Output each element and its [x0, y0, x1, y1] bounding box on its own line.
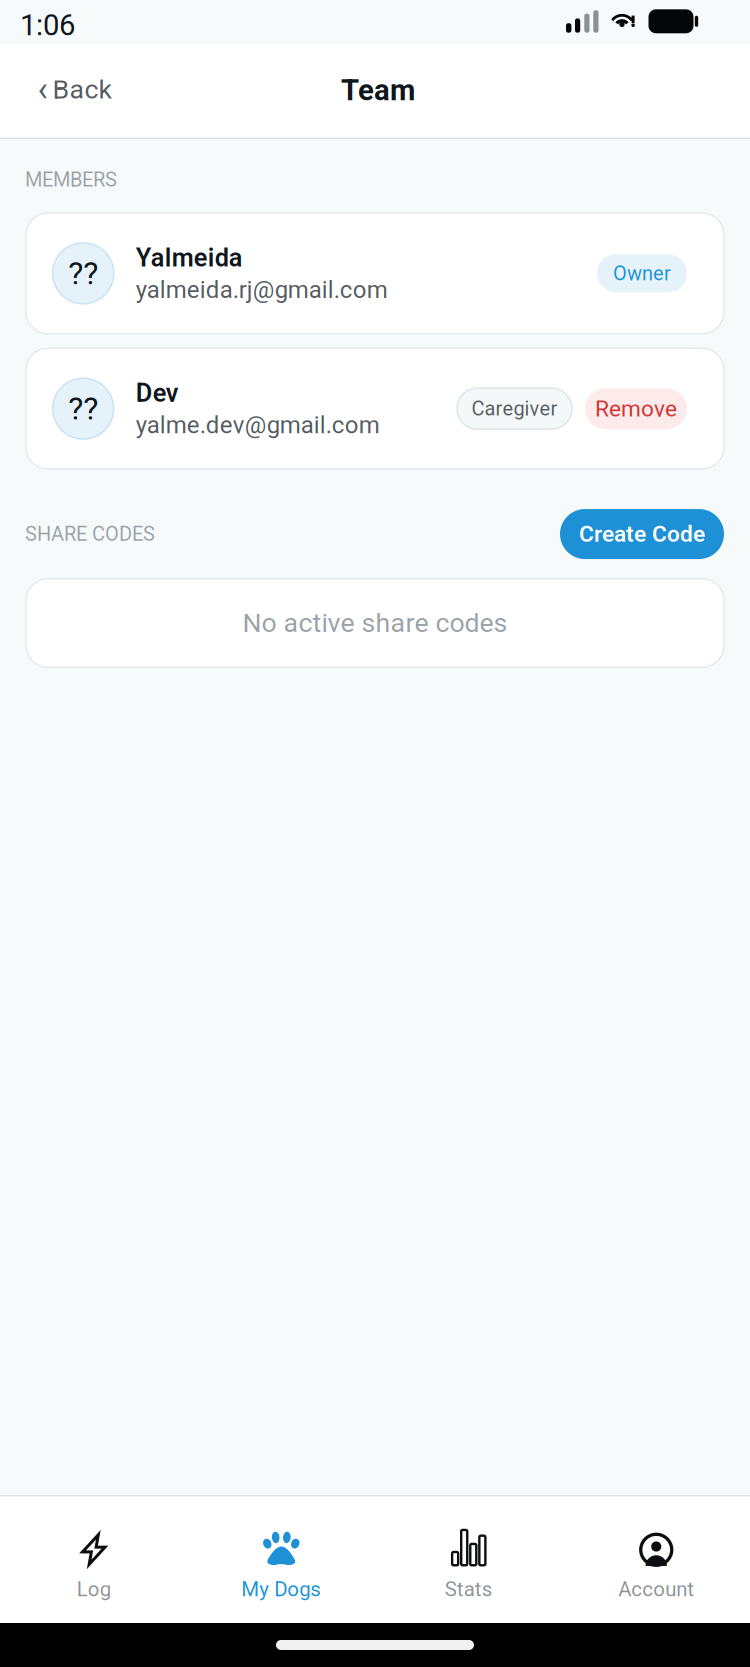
staticText: No active share codes	[242, 607, 507, 639]
staticText: Team	[341, 73, 415, 107]
staticText: ??	[68, 255, 98, 292]
staticText: Caregiver	[471, 397, 557, 420]
staticText: ??	[68, 390, 98, 427]
button[interactable]: ‹	[17, 53, 132, 126]
button[interactable]: My Dogs	[187, 1493, 375, 1626]
button[interactable]: Owner	[597, 254, 687, 292]
button[interactable]: Caregiver	[457, 388, 572, 429]
staticText: ‹	[37, 69, 47, 110]
staticText: Back	[52, 74, 112, 105]
staticText: SHARE CODES	[25, 522, 155, 546]
button[interactable]: Log	[0, 1493, 187, 1626]
staticText: yalme.dev@gmail.com	[136, 411, 380, 439]
staticText: Owner	[613, 262, 671, 285]
staticText: Yalmeida	[136, 243, 243, 273]
staticText: 1:06	[20, 8, 75, 42]
staticText: Remove	[595, 395, 677, 422]
staticText: Create Code	[579, 521, 705, 547]
staticText: MEMBERS	[25, 168, 117, 191]
staticText: My Dogs	[241, 1577, 321, 1601]
staticText: yalmeida.rj@gmail.com	[136, 276, 388, 304]
staticText: Dev	[136, 378, 179, 408]
button[interactable]: Account	[562, 1493, 750, 1626]
staticText: Stats	[445, 1577, 493, 1601]
button[interactable]: Remove	[585, 388, 687, 429]
button[interactable]: Stats	[375, 1493, 562, 1626]
staticText: Account	[618, 1577, 694, 1601]
button[interactable]: Create Code	[560, 509, 724, 559]
staticText: Log	[77, 1577, 111, 1601]
